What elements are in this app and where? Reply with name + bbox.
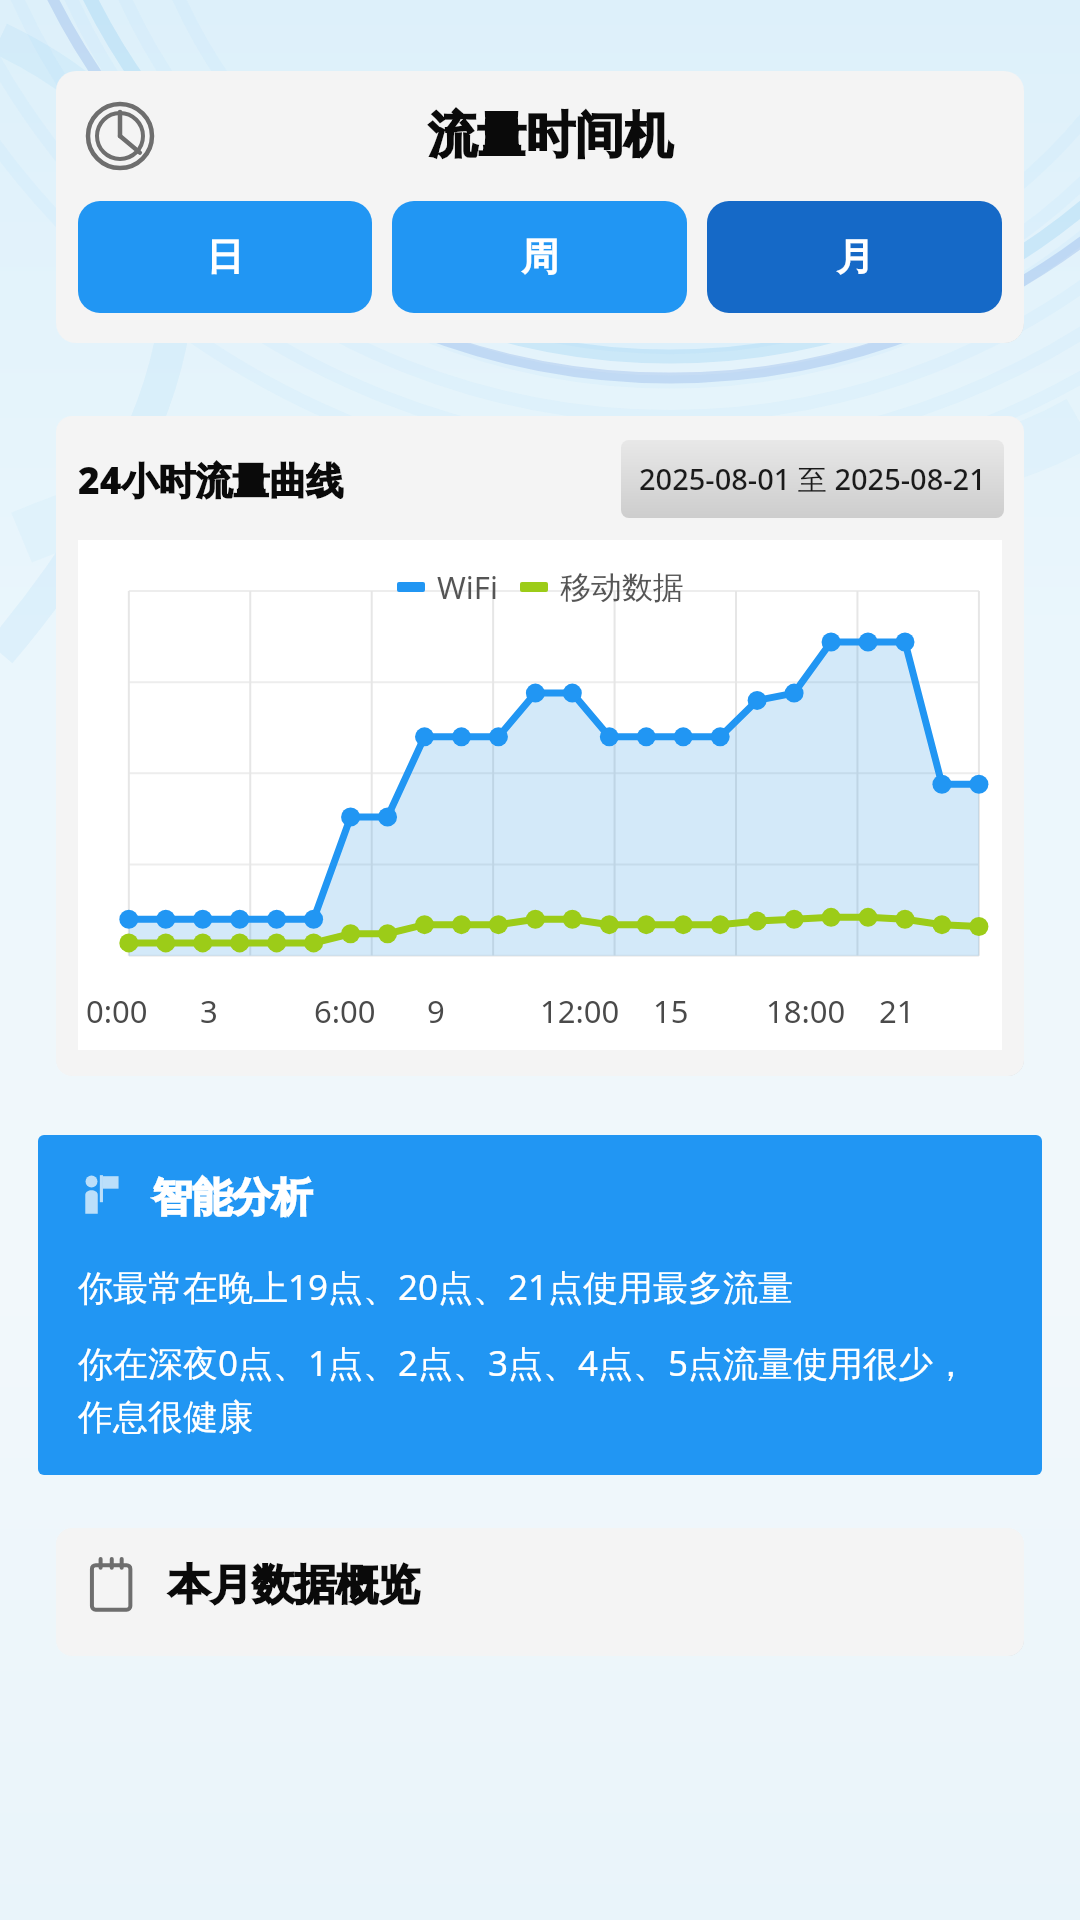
staticText: 你在深夜0点、1点、2点、3点、4点、5点流量使用很少，作息很健康 bbox=[78, 1339, 1002, 1439]
staticText: 流量时间机 bbox=[428, 105, 673, 167]
staticText: 2025-08-01 至 2025-08-21 bbox=[639, 459, 986, 499]
button[interactable]: 2025-08-01 至 2025-08-21 bbox=[621, 440, 1004, 518]
button[interactable]: 日 bbox=[78, 201, 372, 313]
staticText: 18:00 bbox=[766, 990, 846, 1032]
staticText: 3 bbox=[200, 990, 218, 1032]
staticText: 日 bbox=[206, 233, 244, 281]
other: Analysis bbox=[78, 1171, 130, 1223]
button[interactable]: 周 bbox=[392, 201, 687, 313]
staticText: 15 bbox=[653, 990, 689, 1032]
staticText: WiFi bbox=[437, 566, 498, 608]
staticText: 6:00 bbox=[314, 990, 376, 1032]
staticText: 0:00 bbox=[86, 990, 148, 1032]
staticText: 本月数据概览 bbox=[168, 1559, 420, 1612]
staticText: 12:00 bbox=[540, 990, 620, 1032]
staticText: 你最常在晚上19点、20点、21点使用最多流量 bbox=[78, 1263, 794, 1311]
staticText: 周 bbox=[521, 233, 559, 281]
button[interactable]: Analysis bbox=[38, 1135, 1042, 1475]
staticText: 智能分析 bbox=[152, 1172, 312, 1222]
button[interactable]: 月 bbox=[707, 201, 1002, 313]
other: Clock bbox=[84, 100, 156, 172]
staticText: 月 bbox=[836, 233, 874, 281]
staticText: 9 bbox=[427, 990, 445, 1032]
staticText: 移动数据 bbox=[560, 568, 684, 607]
staticText: 21 bbox=[879, 990, 915, 1032]
staticText: 24小时流量曲线 bbox=[78, 454, 344, 505]
other: Calendar bbox=[82, 1554, 144, 1616]
